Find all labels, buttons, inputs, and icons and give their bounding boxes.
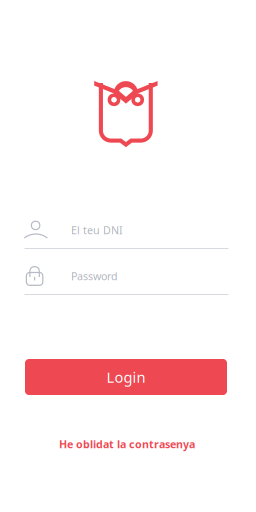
staticText: He oblidat la contrasenya — [59, 437, 195, 451]
staticText: El teu DNI — [71, 223, 123, 237]
staticText: Password — [71, 269, 118, 283]
button[interactable]: He oblidat la contrasenya — [47, 437, 207, 451]
staticText: Login — [106, 367, 145, 387]
button[interactable]: Login — [25, 359, 227, 395]
